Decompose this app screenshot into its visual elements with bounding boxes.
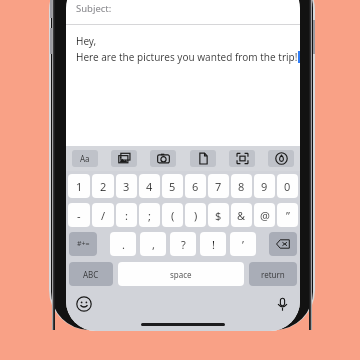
button[interactable]: ( [162,203,183,227]
button[interactable]: Emoji [74,294,94,314]
staticText: 8 [238,179,245,194]
button[interactable]: 0 [277,174,298,198]
staticText: : [125,208,128,223]
button[interactable]: ; [139,203,160,227]
button[interactable]: ? [170,232,196,256]
staticText: 1 [76,179,83,194]
button[interactable]: @ [254,203,275,227]
staticText: ” [286,208,290,223]
staticText: / [101,208,106,223]
button[interactable]: 9 [254,174,275,198]
button[interactable]: #+= [69,232,97,256]
staticText: ABC [83,269,99,280]
button[interactable]: - [68,203,90,227]
staticText: ) [194,208,198,223]
button[interactable]: Camera [150,150,176,167]
button[interactable]: 7 [208,174,229,198]
button[interactable]: : [116,203,137,227]
button[interactable]: / [92,203,114,227]
button[interactable]: Backspace [269,232,297,256]
staticText: ( [171,208,175,223]
staticText: . [122,237,125,252]
staticText: 6 [192,179,199,194]
staticText: return [261,269,285,280]
button[interactable]: & [231,203,252,227]
staticText: ? [181,237,186,252]
button[interactable]: ABC [69,262,113,286]
button[interactable]: space [118,262,244,286]
button[interactable]: Photos [111,150,137,167]
staticText: space [170,269,192,280]
staticText: 4 [146,179,153,194]
staticText: $ [215,208,222,223]
staticText: ’ [242,237,244,252]
staticText: 5 [169,179,176,194]
staticText: 0 [284,179,291,194]
staticText: Subject: [76,2,112,15]
button[interactable]: return [249,262,297,286]
staticText: , [152,237,155,252]
staticText: @ [260,208,270,223]
staticText: - [77,208,81,223]
button[interactable]: , [140,232,166,256]
staticText: 3 [123,179,130,194]
staticText: Aa [80,153,90,164]
staticText: Hey, [76,34,97,48]
button[interactable]: Scan document [229,150,255,167]
button[interactable]: 6 [185,174,206,198]
button[interactable]: $ [208,203,229,227]
staticText: ! [212,237,215,252]
button[interactable]: 3 [116,174,137,198]
staticText: Here are the pictures you wanted from th… [76,50,298,64]
button[interactable]: ” [277,203,298,227]
button[interactable]: 8 [231,174,252,198]
button[interactable]: Text format [72,150,98,167]
button[interactable]: ! [200,232,226,256]
button[interactable]: 5 [162,174,183,198]
button[interactable]: 2 [92,174,114,198]
staticText: #+= [77,239,90,249]
button[interactable]: ’ [230,232,256,256]
staticText: 2 [100,179,107,194]
staticText: 9 [261,179,268,194]
button[interactable]: Dictation [272,294,292,314]
button[interactable]: Markup [268,150,294,167]
button[interactable]: Document [190,150,216,167]
staticText: & [237,208,246,223]
staticText: 7 [215,179,222,194]
button[interactable]: 1 [68,174,90,198]
staticText: ; [148,208,151,223]
button[interactable]: 4 [139,174,160,198]
button[interactable]: . [110,232,136,256]
button[interactable]: ) [185,203,206,227]
